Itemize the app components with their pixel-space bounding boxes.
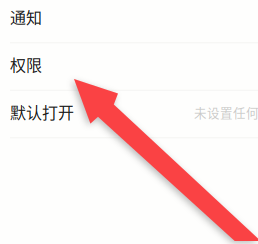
button[interactable]: 通知	[0, 0, 258, 42]
staticText: 未设置任何默认操作	[194, 103, 258, 121]
staticText: 权限	[10, 53, 42, 76]
button[interactable]: 默认打开	[0, 91, 258, 137]
staticText: 通知	[10, 5, 42, 28]
staticText: 默认打开	[10, 100, 74, 123]
button[interactable]: 权限	[0, 43, 258, 90]
